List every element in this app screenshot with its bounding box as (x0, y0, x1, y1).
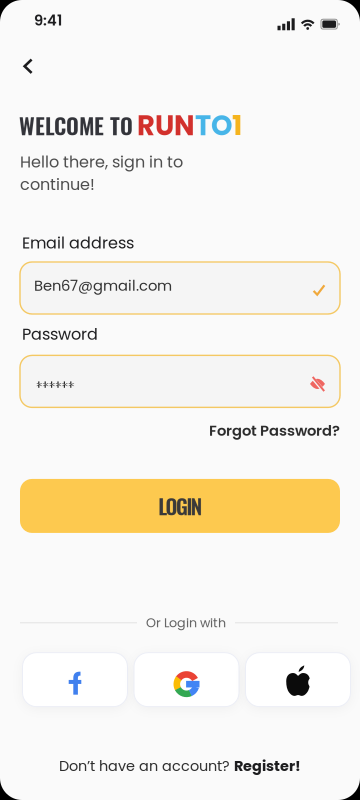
staticText: Email address (22, 232, 134, 254)
staticText: Or Login with (146, 614, 226, 632)
staticText: TO (195, 106, 232, 145)
staticText: Ben67@gmail.com (34, 275, 172, 296)
button[interactable]: Back (23, 59, 33, 73)
staticText: WELCOME TO (19, 109, 133, 142)
staticText: Password (22, 323, 98, 345)
button[interactable]: Show password (310, 377, 325, 391)
staticText: Forgot Password? (209, 420, 340, 441)
staticText: 1 (232, 106, 242, 145)
staticText: continue! (20, 173, 95, 196)
button[interactable]: Login with Facebook (22, 653, 127, 707)
staticText: Hello there, sign in to (20, 151, 183, 173)
button[interactable]: Forgot Password? (209, 420, 340, 441)
staticText: Don’t have an account? (59, 756, 230, 776)
staticText: 9:41 (34, 10, 62, 30)
staticText: Register! (234, 756, 301, 776)
button[interactable]: Login with Google (134, 653, 239, 707)
button[interactable]: Don’t have an account? (59, 756, 301, 776)
staticText: LOGIN (158, 491, 202, 521)
button[interactable]: LOGIN (20, 479, 340, 533)
button[interactable]: Login with Apple (245, 653, 350, 707)
staticText: RUN (137, 106, 195, 145)
